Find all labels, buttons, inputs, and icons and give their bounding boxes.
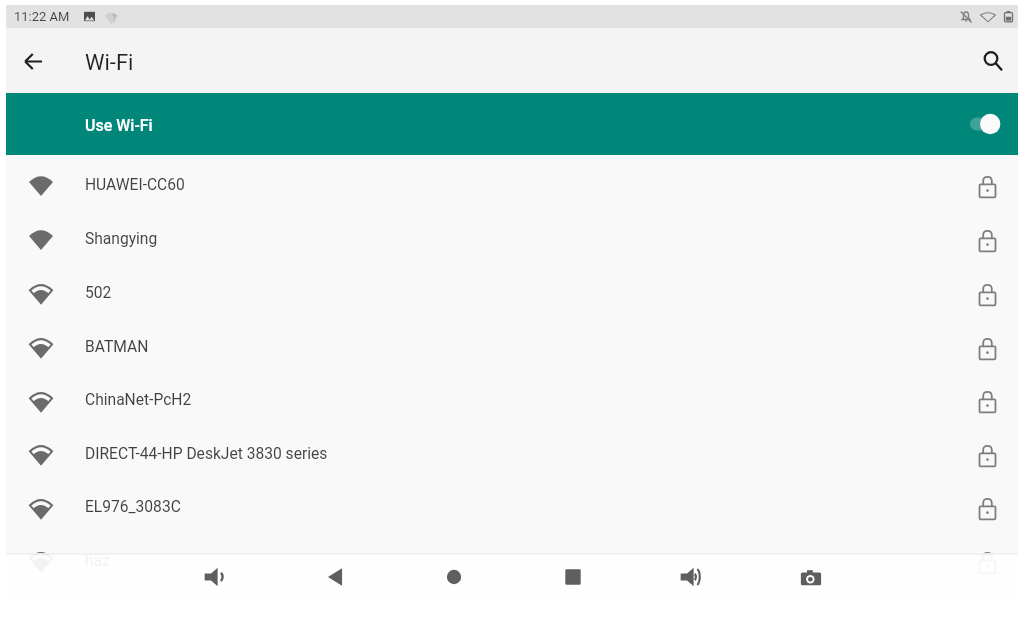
button[interactable]: Search bbox=[970, 38, 1016, 84]
staticText: Use Wi-Fi bbox=[85, 116, 153, 135]
button[interactable]: Shangying bbox=[6, 210, 1018, 264]
button[interactable]: BATMAN bbox=[6, 318, 1018, 372]
button[interactable]: Recents bbox=[549, 553, 597, 601]
staticText: BATMAN bbox=[85, 338, 149, 356]
staticText: Wi-Fi bbox=[85, 50, 134, 76]
button[interactable]: HUAWEI-CC60 bbox=[6, 156, 1018, 210]
button[interactable]: Camera bbox=[787, 553, 835, 601]
button[interactable]: Home bbox=[430, 553, 478, 601]
staticText: HUAWEI-CC60 bbox=[85, 176, 185, 194]
button[interactable]: Back bbox=[10, 38, 56, 84]
button[interactable]: Use Wi-Fi bbox=[6, 93, 1018, 155]
staticText: 11:22 AM bbox=[14, 9, 70, 24]
button[interactable]: Volume up bbox=[667, 553, 715, 601]
staticText: ChinaNet-PcH2 bbox=[85, 391, 192, 409]
staticText: Shangying bbox=[85, 230, 158, 248]
button[interactable]: Volume down bbox=[191, 553, 239, 601]
button[interactable]: 502 bbox=[6, 264, 1018, 318]
button[interactable]: EL976_3083C bbox=[6, 479, 1018, 532]
staticText: haz bbox=[85, 552, 110, 570]
button[interactable]: haz bbox=[6, 532, 1018, 586]
button[interactable]: Back bbox=[311, 553, 359, 601]
button[interactable]: DIRECT-44-HP DeskJet 3830 series bbox=[6, 425, 1018, 479]
button[interactable]: ChinaNet-PcH2 bbox=[6, 372, 1018, 425]
staticText: DIRECT-44-HP DeskJet 3830 series bbox=[85, 445, 328, 463]
staticText: 502 bbox=[85, 284, 112, 302]
staticText: EL976_3083C bbox=[85, 498, 181, 516]
